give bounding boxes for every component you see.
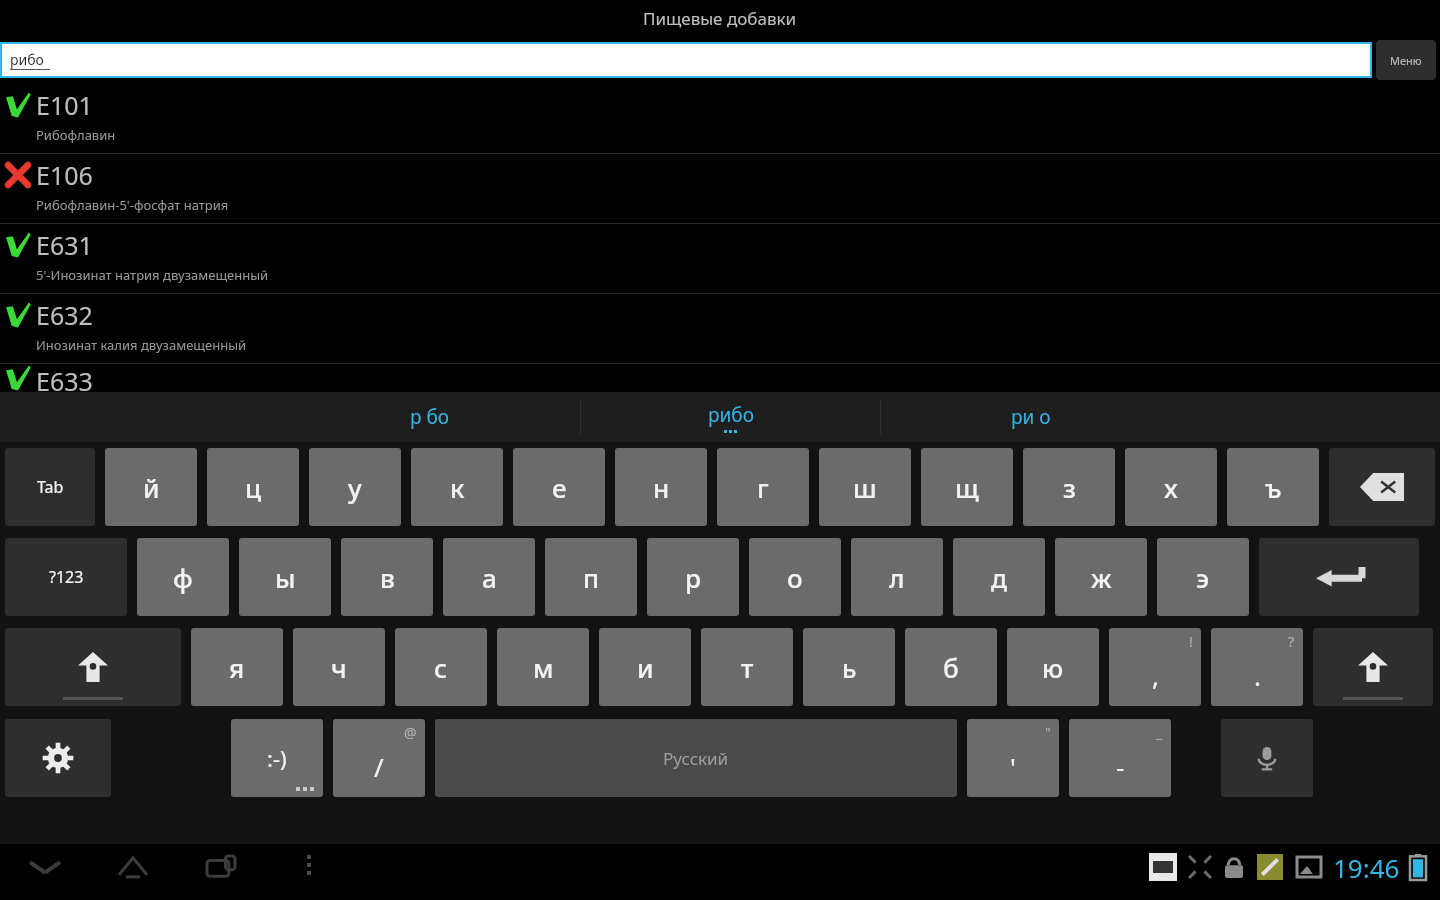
button[interactable]: д — [953, 538, 1045, 616]
button[interactable]: E632 — [0, 294, 1440, 363]
button[interactable]: Меню — [1376, 40, 1436, 80]
button[interactable]: рибо — [2, 44, 1370, 76]
button[interactable]: More options — [286, 844, 332, 890]
button[interactable]: и — [599, 628, 691, 706]
button[interactable]: н — [615, 448, 707, 526]
staticText: ф — [173, 560, 193, 595]
staticText: э — [1196, 560, 1210, 595]
staticText: E631 — [36, 228, 93, 262]
button[interactable]: р — [647, 538, 739, 616]
staticText: е — [552, 470, 567, 505]
staticText: ? — [1288, 632, 1295, 651]
button[interactable]: т — [701, 628, 793, 706]
button[interactable]: Hide keyboard — [22, 844, 68, 890]
button[interactable]: E631 — [0, 224, 1440, 293]
button[interactable]: ю — [1007, 628, 1099, 706]
staticText: :-) — [267, 743, 287, 773]
button[interactable]: ! — [1109, 628, 1201, 706]
button[interactable]: Home — [110, 844, 156, 890]
staticText: р бо — [410, 404, 450, 430]
staticText: 5'-Инозинат натрия двузамещенный — [36, 266, 269, 284]
button[interactable]: @ — [333, 719, 425, 797]
staticText: E633 — [36, 364, 93, 392]
button[interactable]: м — [497, 628, 589, 706]
button[interactable]: б — [905, 628, 997, 706]
button[interactable]: п — [545, 538, 637, 616]
button[interactable]: :-) — [231, 719, 323, 797]
button[interactable]: E633 — [0, 364, 1440, 392]
button[interactable]: ж — [1055, 538, 1147, 616]
staticText: о — [787, 560, 803, 595]
button[interactable]: E101 — [0, 84, 1440, 153]
button[interactable]: Tab — [5, 448, 95, 526]
staticText: й — [143, 470, 160, 505]
button[interactable]: а — [443, 538, 535, 616]
button[interactable]: Enter — [1259, 538, 1419, 616]
staticText: р — [685, 560, 702, 595]
button[interactable]: _ — [1069, 719, 1171, 797]
staticText: . — [1254, 658, 1261, 693]
button[interactable]: ри о — [881, 392, 1180, 442]
button[interactable]: я — [191, 628, 283, 706]
button[interactable]: Settings — [5, 719, 111, 797]
staticText: я — [229, 650, 245, 685]
button[interactable]: у — [309, 448, 401, 526]
staticText: ц — [245, 470, 262, 505]
button[interactable]: ? — [1211, 628, 1303, 706]
staticText: к — [450, 470, 465, 505]
button[interactable]: Backspace — [1329, 448, 1435, 526]
staticText: ри о — [1011, 404, 1051, 430]
button[interactable]: Русский — [435, 719, 957, 797]
button[interactable]: с — [395, 628, 487, 706]
button[interactable]: э — [1157, 538, 1249, 616]
staticText: н — [653, 470, 670, 505]
staticText: Меню — [1390, 53, 1422, 68]
button[interactable]: ц — [207, 448, 299, 526]
button[interactable]: о — [749, 538, 841, 616]
button[interactable]: рибо — [581, 392, 880, 442]
staticText: E101 — [36, 88, 93, 122]
button[interactable]: ы — [239, 538, 331, 616]
button[interactable]: щ — [921, 448, 1013, 526]
button[interactable]: г — [717, 448, 809, 526]
button[interactable]: л — [851, 538, 943, 616]
staticText: в — [380, 560, 395, 595]
button[interactable]: ч — [293, 628, 385, 706]
staticText: с — [434, 650, 448, 685]
button[interactable]: Shift — [1313, 628, 1433, 706]
button[interactable]: ь — [803, 628, 895, 706]
button[interactable]: ?123 — [5, 538, 127, 616]
staticText: E632 — [36, 298, 93, 332]
staticText: ж — [1091, 560, 1112, 595]
button[interactable]: е — [513, 448, 605, 526]
button[interactable]: р бо — [280, 392, 580, 442]
button[interactable]: E106 — [0, 154, 1440, 223]
staticText: а — [482, 560, 497, 595]
staticText: ь — [842, 650, 857, 685]
staticText: ' — [1010, 749, 1016, 784]
staticText: Tab — [37, 476, 64, 498]
button[interactable]: в — [341, 538, 433, 616]
button[interactable]: ф — [137, 538, 229, 616]
button[interactable]: х — [1125, 448, 1217, 526]
staticText: х — [1164, 470, 1178, 505]
staticText: Русский — [663, 747, 729, 770]
button[interactable]: Voice input — [1221, 719, 1313, 797]
button[interactable]: з — [1023, 448, 1115, 526]
staticText: ы — [275, 560, 296, 595]
staticText: б — [943, 650, 959, 685]
button[interactable]: Shift — [5, 628, 181, 706]
button[interactable]: к — [411, 448, 503, 526]
staticText: д — [991, 560, 1008, 595]
staticText: Рибофлавин-5'-фосфат натрия — [36, 196, 229, 214]
button[interactable]: й — [105, 448, 197, 526]
button[interactable]: Recents — [198, 844, 244, 890]
staticText: ! — [1189, 632, 1193, 651]
staticText: / — [374, 749, 384, 784]
button[interactable]: ш — [819, 448, 911, 526]
staticText: " — [1045, 723, 1051, 742]
button[interactable]: ъ — [1227, 448, 1319, 526]
staticText: - — [1116, 749, 1125, 784]
button[interactable]: " — [967, 719, 1059, 797]
staticText: ъ — [1265, 470, 1282, 505]
